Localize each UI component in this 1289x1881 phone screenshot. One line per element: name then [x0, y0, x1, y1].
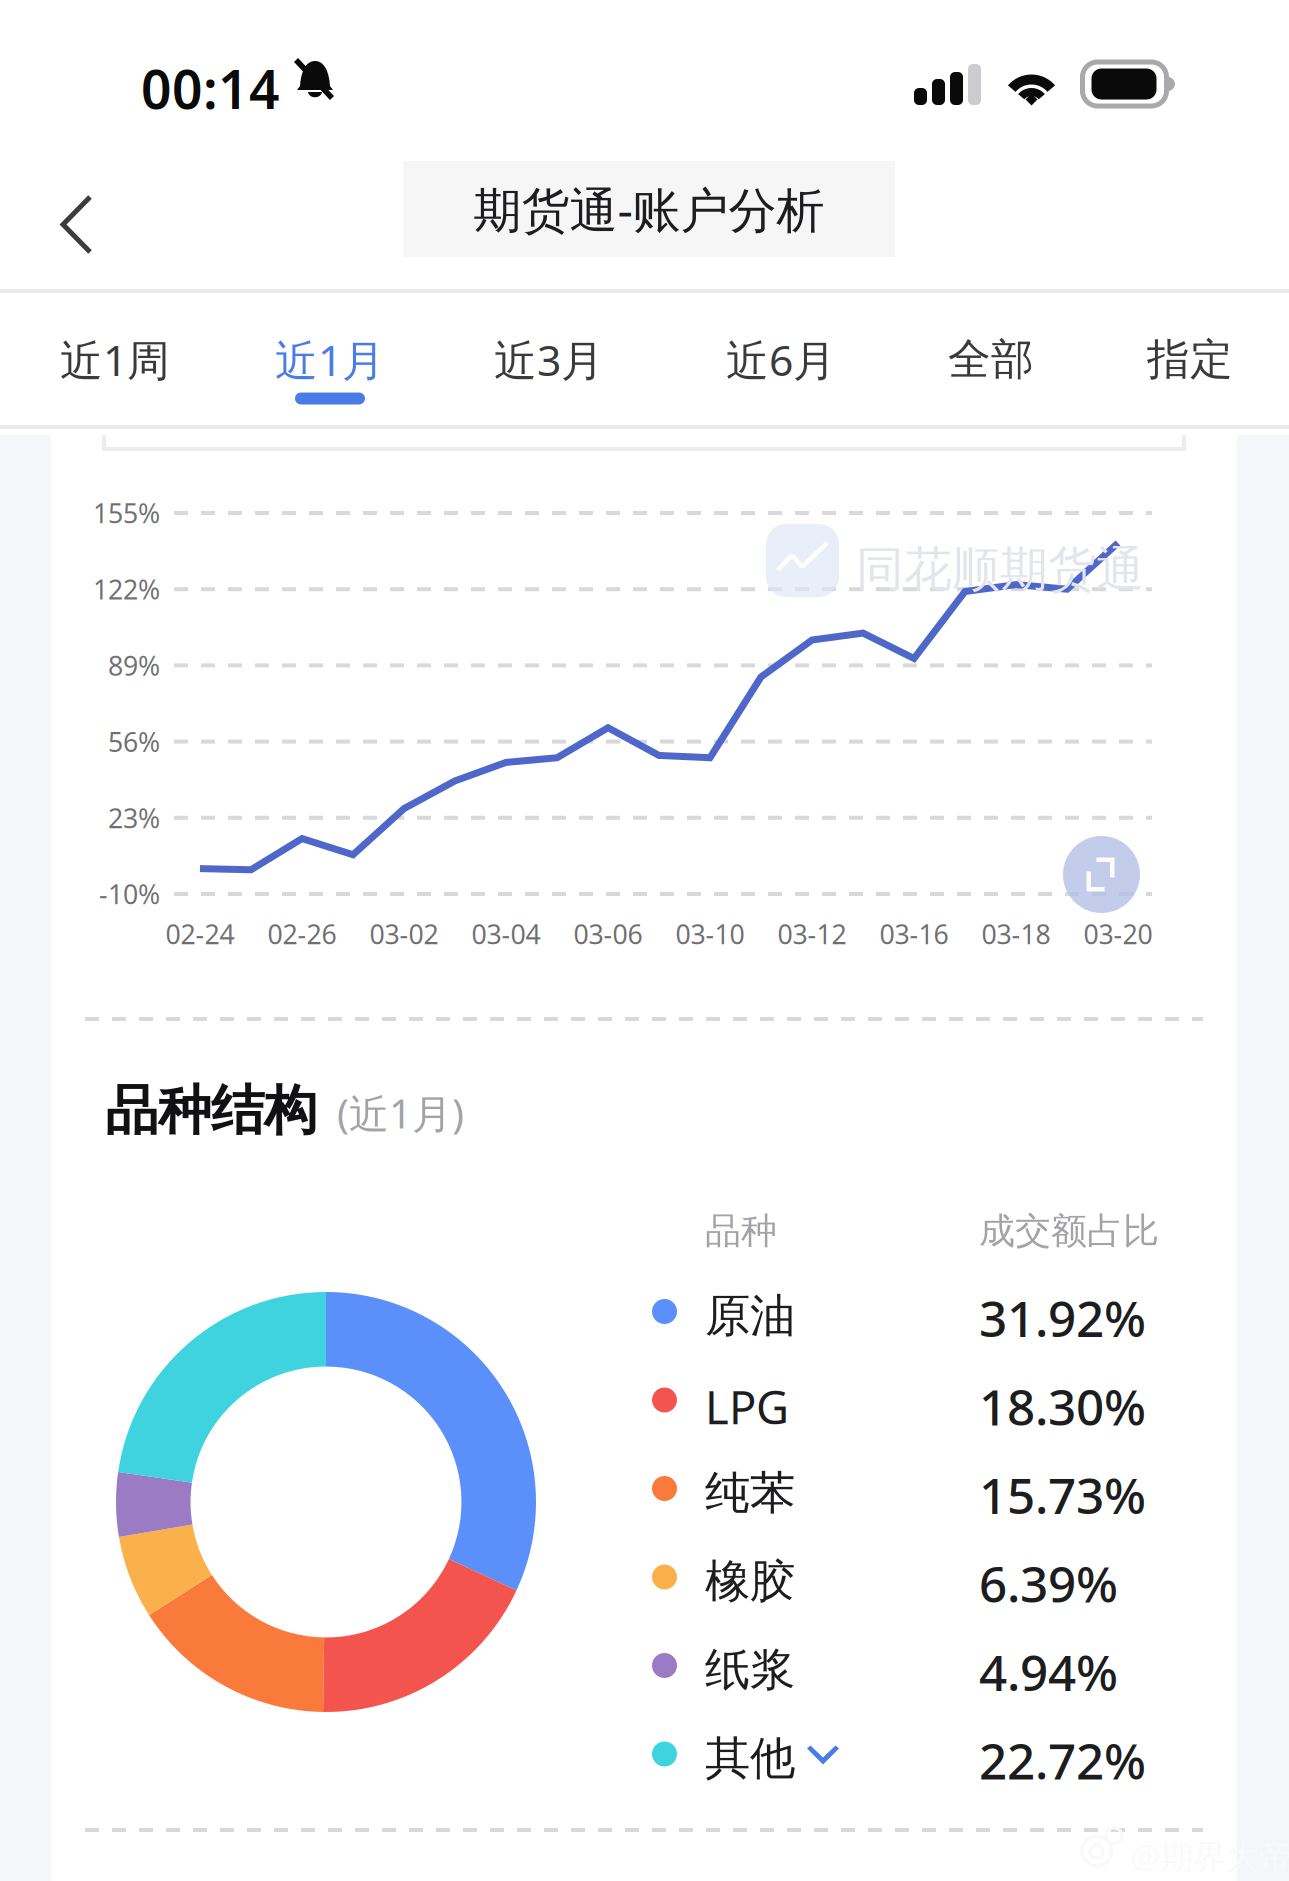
staticText: 近1周: [60, 331, 170, 388]
staticText: 原油: [705, 1288, 795, 1344]
staticText: 其他: [705, 1730, 795, 1786]
staticText: 近6月: [726, 331, 836, 388]
staticText: 03-06: [573, 916, 642, 952]
staticText: @期界大帝: [1130, 1834, 1289, 1878]
staticText: 56%: [108, 724, 160, 759]
staticText: 03-04: [471, 916, 540, 952]
staticText: 近3月: [494, 331, 604, 388]
staticText: 03-18: [981, 916, 1050, 952]
staticText: 31.92%: [979, 1285, 1146, 1350]
button[interactable]: 近1月: [230, 320, 430, 420]
staticText: 89%: [108, 648, 160, 683]
button[interactable]: 近6月: [681, 320, 881, 420]
staticText: 指定: [1147, 333, 1233, 386]
staticText: 03-12: [777, 916, 846, 952]
staticText: 同花顺期货通: [856, 540, 1144, 599]
staticText: 155%: [93, 495, 160, 531]
staticText: 6.39%: [979, 1550, 1118, 1616]
button[interactable]: 近3月: [449, 320, 649, 420]
staticText: 4.94%: [979, 1639, 1118, 1704]
staticText: 品种结构: [105, 1078, 317, 1143]
staticText: 02-26: [267, 916, 336, 952]
staticText: LPG: [705, 1376, 789, 1437]
staticText: (近1月): [317, 1086, 464, 1139]
staticText: 近1月: [275, 331, 385, 388]
button[interactable]: 近1周: [15, 320, 215, 420]
staticText: 122%: [93, 571, 160, 607]
staticText: 22.72%: [979, 1727, 1146, 1793]
staticText: 02-24: [165, 916, 234, 952]
staticText: 纸浆: [705, 1642, 795, 1698]
staticText: 03-10: [675, 916, 744, 952]
staticText: 03-20: [1083, 916, 1152, 952]
staticText: 橡胶: [705, 1553, 795, 1609]
staticText: 18.30%: [979, 1373, 1146, 1439]
button[interactable]: 全屏: [1063, 836, 1140, 913]
button[interactable]: 返回: [31, 172, 122, 277]
staticText: 品种: [705, 1209, 777, 1253]
staticText: 23%: [108, 800, 160, 835]
staticText: 03-02: [369, 916, 438, 952]
button[interactable]: 指定: [1090, 320, 1289, 420]
staticText: 15.73%: [979, 1462, 1146, 1527]
staticText: 全部: [948, 333, 1034, 386]
staticText: 期货通-账户分析: [473, 177, 824, 241]
staticText: 03-16: [879, 916, 948, 952]
staticText: 00:14: [141, 53, 280, 124]
staticText: -10%: [99, 876, 160, 912]
button[interactable]: 全部: [891, 320, 1091, 420]
staticText: 成交额占比: [979, 1209, 1159, 1253]
staticText: 纯苯: [705, 1465, 795, 1521]
